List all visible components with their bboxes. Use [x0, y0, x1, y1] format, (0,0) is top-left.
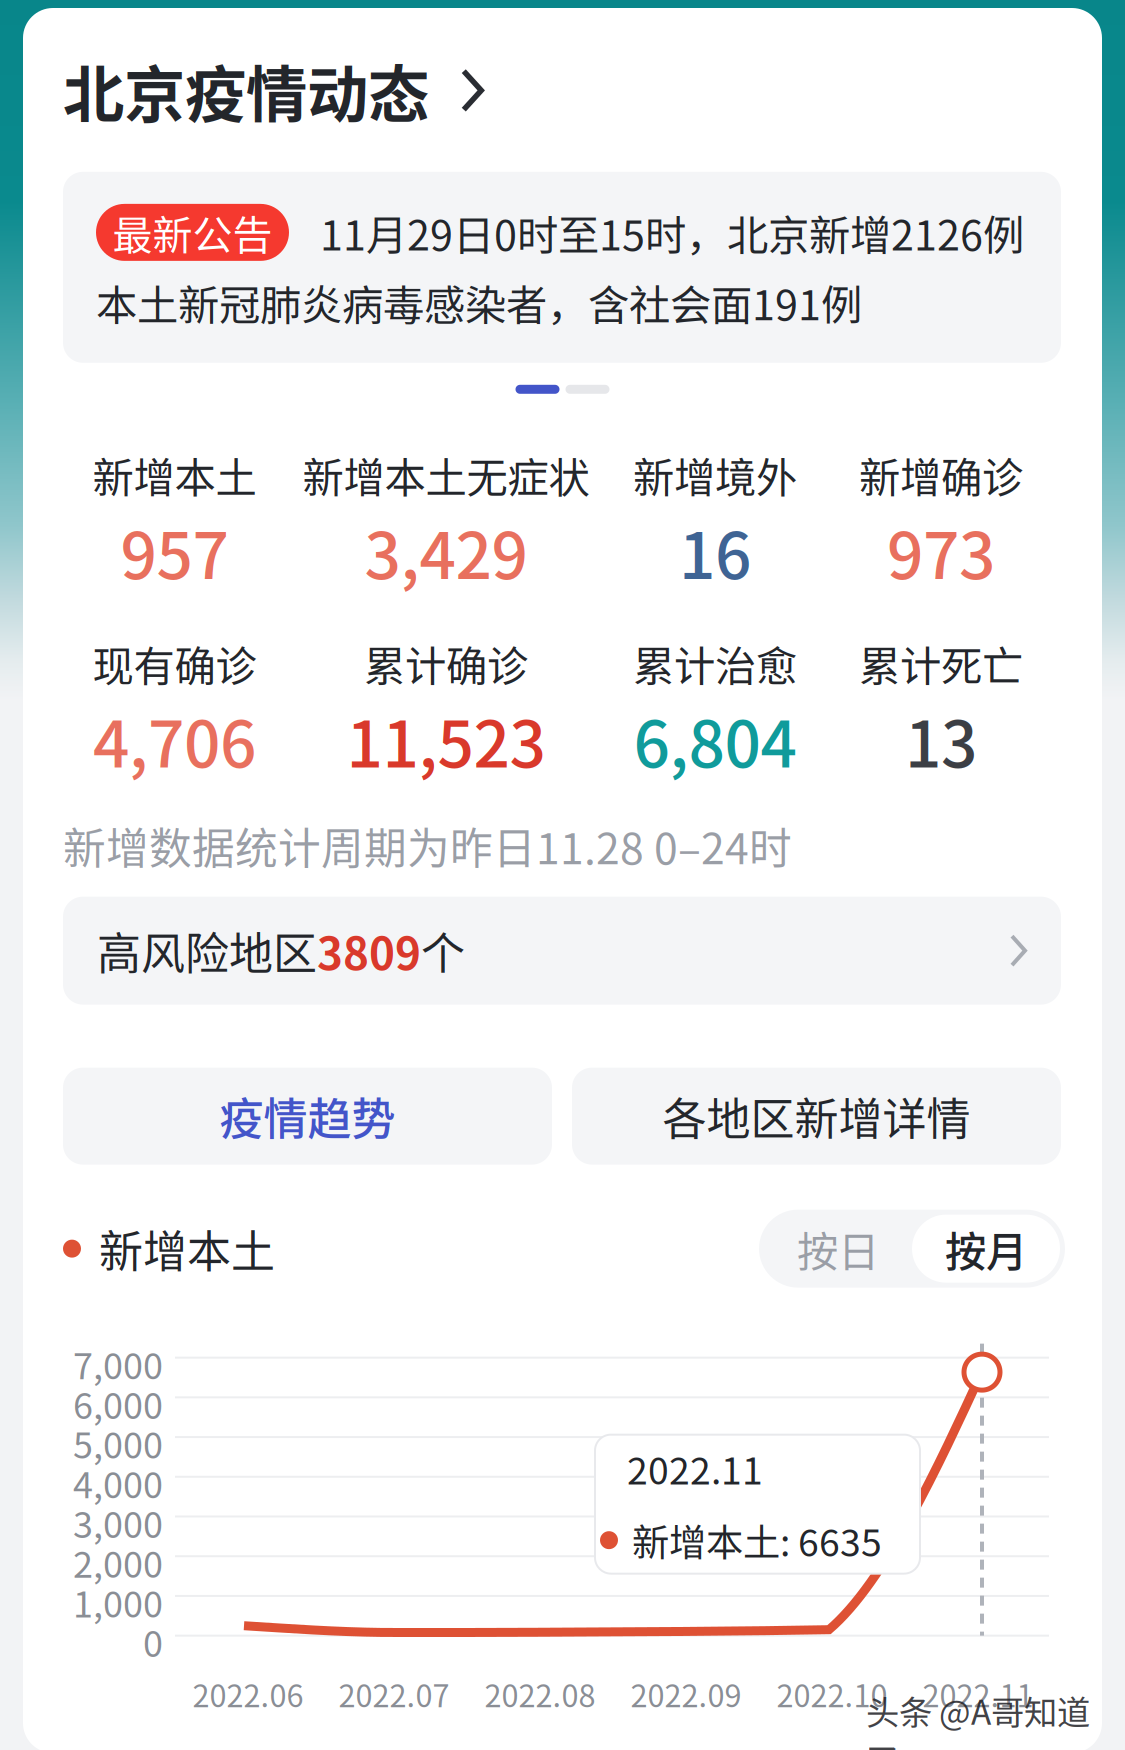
staticText: 0 [143, 1615, 163, 1667]
staticText: 2022.09 [630, 1672, 741, 1716]
button[interactable]: 按日 [764, 1215, 912, 1283]
staticText: 现有确诊 [92, 633, 256, 693]
staticText: 个 [421, 919, 465, 982]
staticText: 2022.11 [922, 1672, 1033, 1716]
button[interactable]: 高风险地区 [23, 897, 1061, 1005]
staticText: 新增本土 [99, 1217, 275, 1280]
staticText: 2,000 [73, 1536, 163, 1588]
staticText: 2022.07 [338, 1672, 449, 1716]
staticText: 2022.06 [192, 1672, 303, 1716]
staticText: 新增境外 [633, 445, 797, 505]
staticText: 2022.10 [776, 1672, 887, 1716]
staticText: 累计确诊 [364, 633, 528, 693]
staticText: 新增本土: 6635 [632, 1513, 882, 1567]
staticText: 957 [120, 505, 228, 597]
staticText: 2022.08 [484, 1672, 595, 1716]
staticText: 11,523 [346, 693, 545, 786]
button[interactable]: 北京疫情动态 [23, 8, 484, 172]
staticText: 新增数据统计周期为昨日11.28 0–24时 [63, 815, 792, 877]
staticText: 新增本土无症状 [302, 445, 589, 505]
staticText: 累计治愈 [633, 633, 797, 693]
staticText: 疫情趋势 [219, 1084, 395, 1148]
staticText: 11月29日0时至15时，北京新增2126例 [320, 202, 1024, 262]
staticText: 头条 @A哥知道了 [866, 1686, 1090, 1750]
staticText: 3,000 [73, 1496, 163, 1548]
staticText: 新增确诊 [859, 445, 1023, 505]
staticText: 7,000 [73, 1337, 163, 1389]
staticText: 4,706 [93, 693, 256, 786]
staticText: 最新公告 [112, 203, 272, 261]
button[interactable]: 按月 [912, 1215, 1060, 1283]
staticText: 13 [905, 693, 977, 786]
staticText: 按月 [945, 1219, 1027, 1279]
staticText: 3809 [317, 919, 421, 982]
button[interactable]: 各地区新增详情 [572, 1068, 1061, 1165]
staticText: 973 [887, 505, 995, 597]
staticText: 累计死亡 [859, 633, 1023, 693]
staticText: 按日 [797, 1219, 879, 1279]
staticText: 4,000 [73, 1456, 163, 1509]
staticText: 2022.11 [627, 1441, 763, 1495]
staticText: 高风险地区 [97, 919, 317, 982]
staticText: 1,000 [73, 1576, 163, 1628]
staticText: 6,804 [633, 693, 796, 786]
staticText: 本土新冠肺炎病毒感染者，含社会面191例 [96, 272, 862, 332]
staticText: 新增本土 [92, 445, 256, 505]
staticText: 各地区新增详情 [662, 1084, 970, 1148]
staticText: 3,429 [364, 505, 527, 597]
staticText: 6,000 [73, 1377, 163, 1429]
staticText: 16 [679, 505, 751, 597]
staticText: 北京疫情动态 [63, 46, 429, 135]
button[interactable]: 疫情趋势 [63, 1068, 552, 1165]
staticText: 5,000 [73, 1417, 163, 1469]
